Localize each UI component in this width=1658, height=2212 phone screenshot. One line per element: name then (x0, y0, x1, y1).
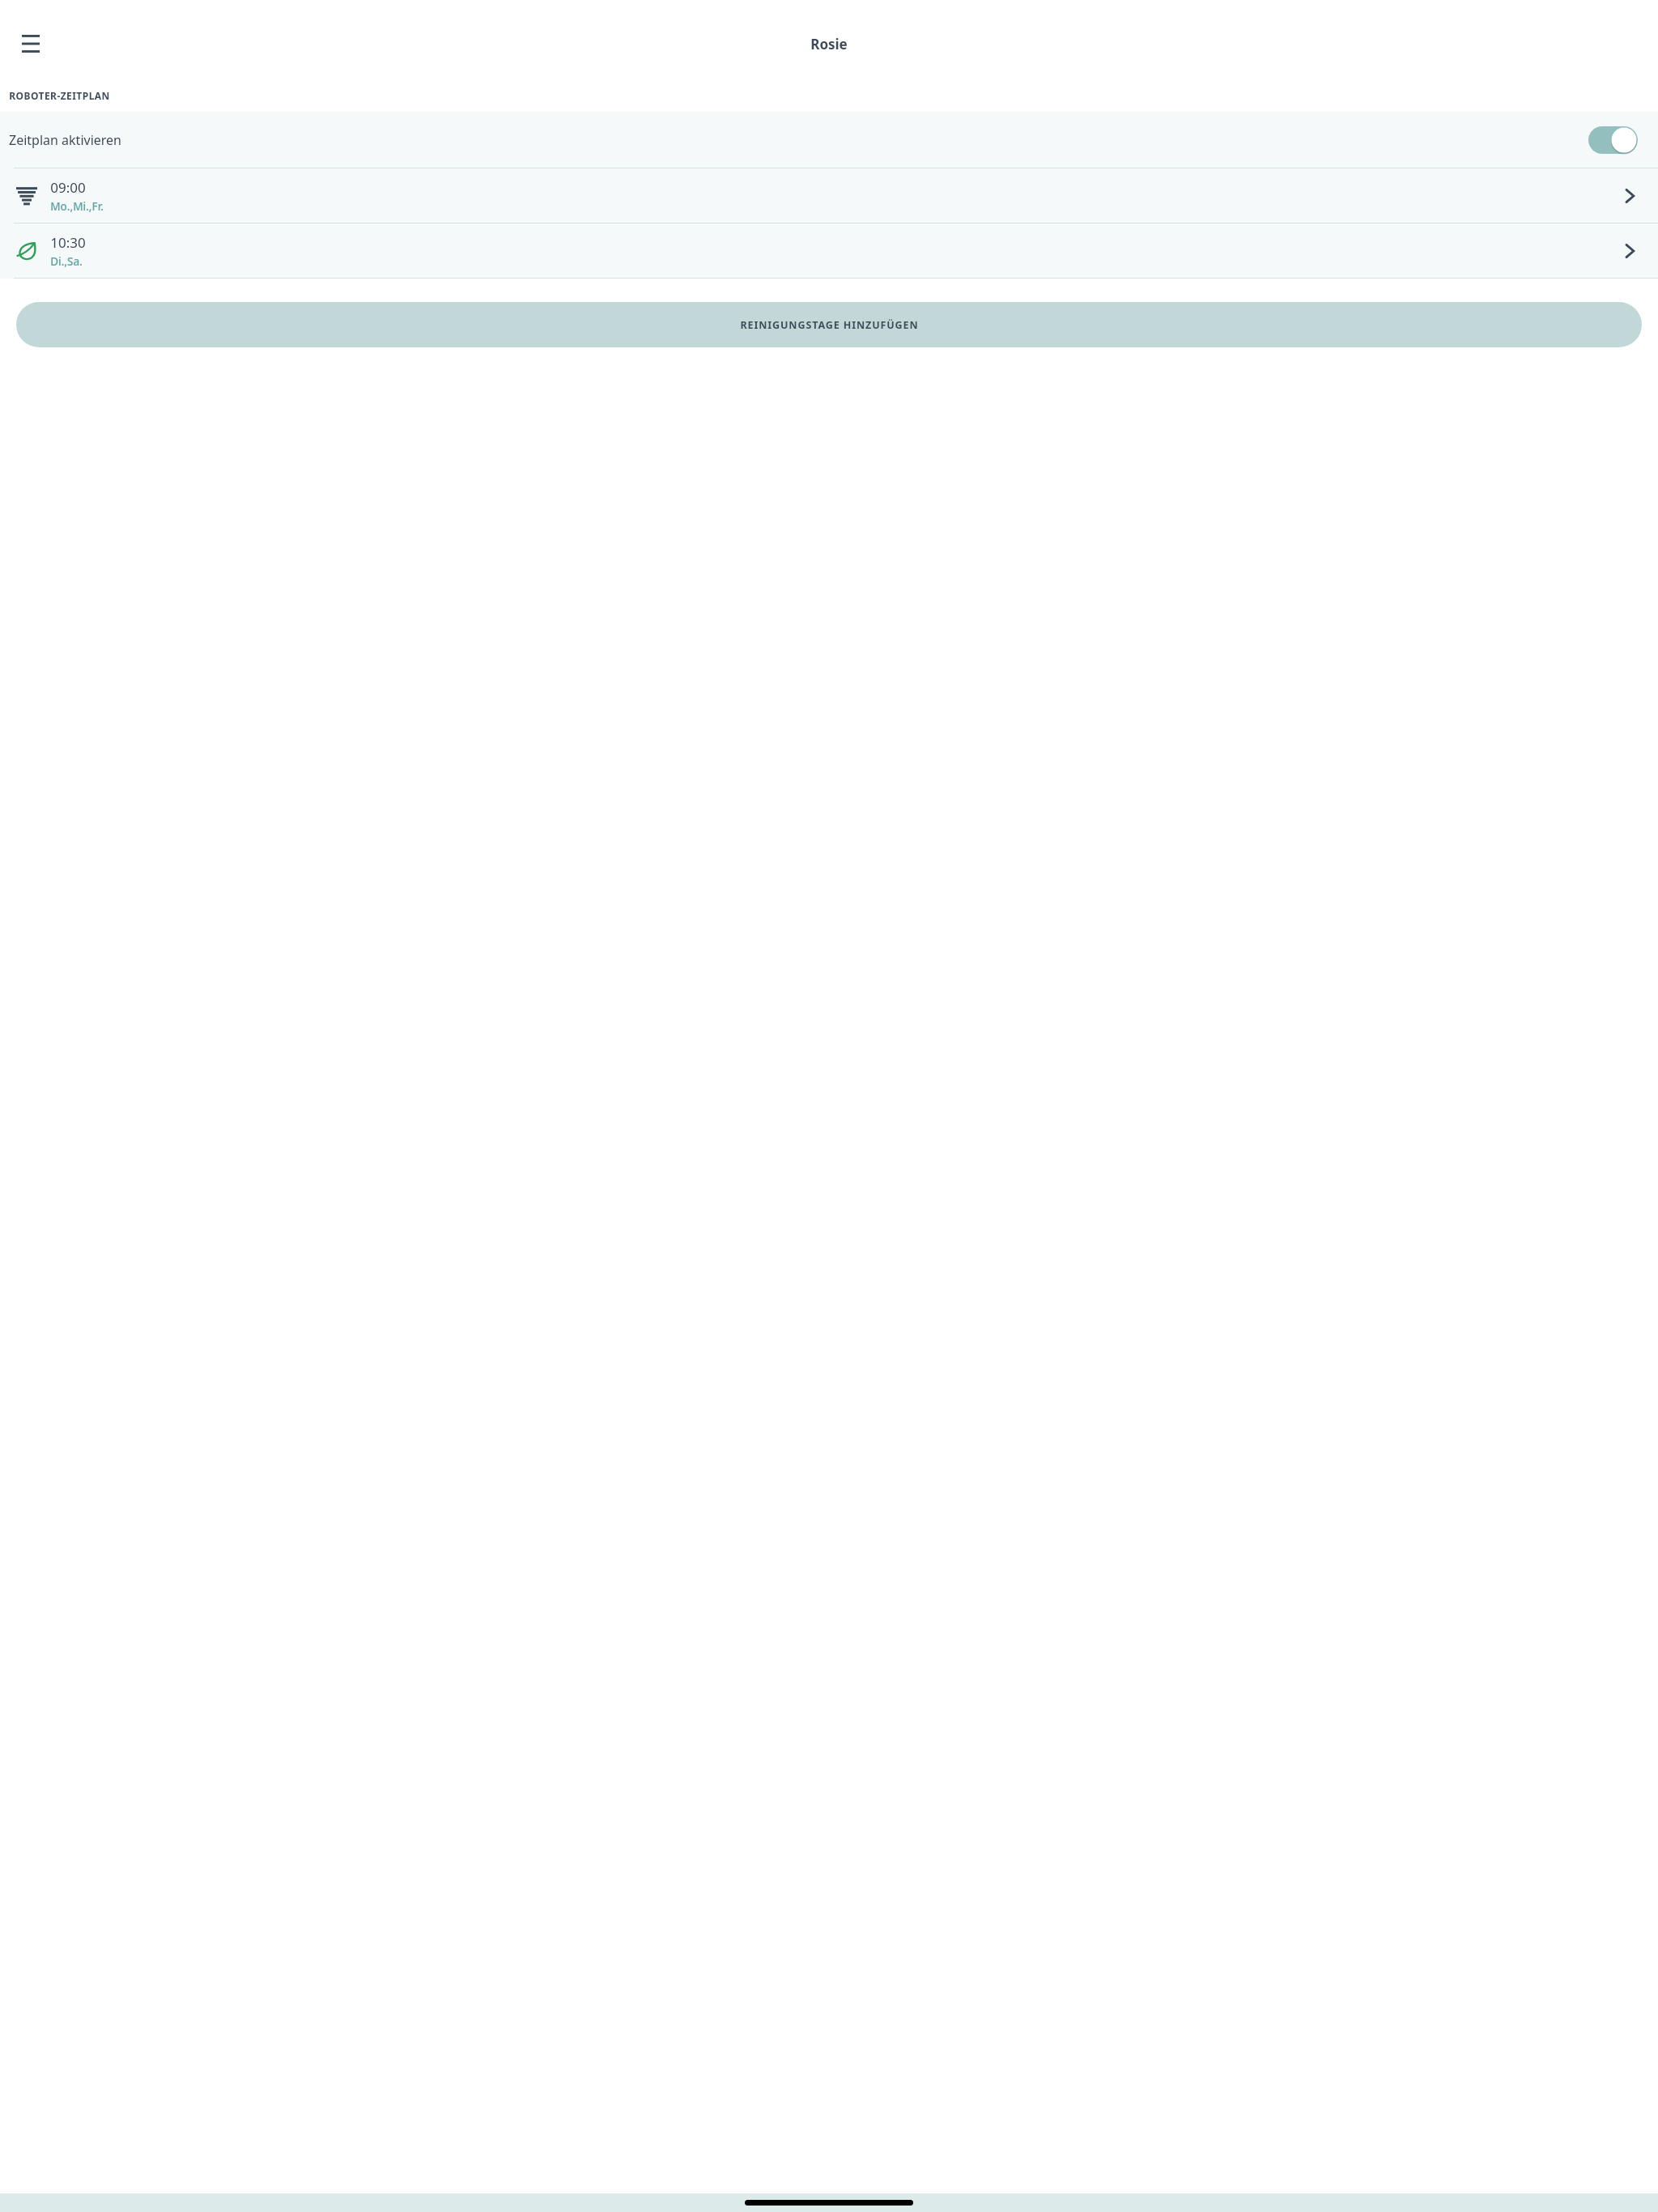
staticText: Rosie (810, 35, 848, 53)
staticText: REINIGUNGSTAGE HINZUFÜGEN (740, 318, 919, 332)
button[interactable]: 10:30 (0, 223, 1658, 278)
button[interactable]: REINIGUNGSTAGE HINZUFÜGEN (16, 302, 1642, 347)
button[interactable]: 09:00 (0, 168, 1658, 223)
button[interactable]: Zeitplan aktivieren (0, 112, 1658, 168)
button[interactable]: Zeitplan aktivieren (1588, 126, 1638, 154)
staticText: 10:30 (50, 233, 86, 252)
staticText: Di.,Sa. (50, 254, 83, 269)
staticText: 09:00 (50, 178, 86, 197)
button[interactable]: Menu (8, 21, 53, 66)
staticText: Mo.,Mi.,Fr. (50, 199, 104, 214)
staticText: Zeitplan aktivieren (9, 131, 121, 149)
staticText: ROBOTER-ZEITPLAN (9, 89, 110, 102)
